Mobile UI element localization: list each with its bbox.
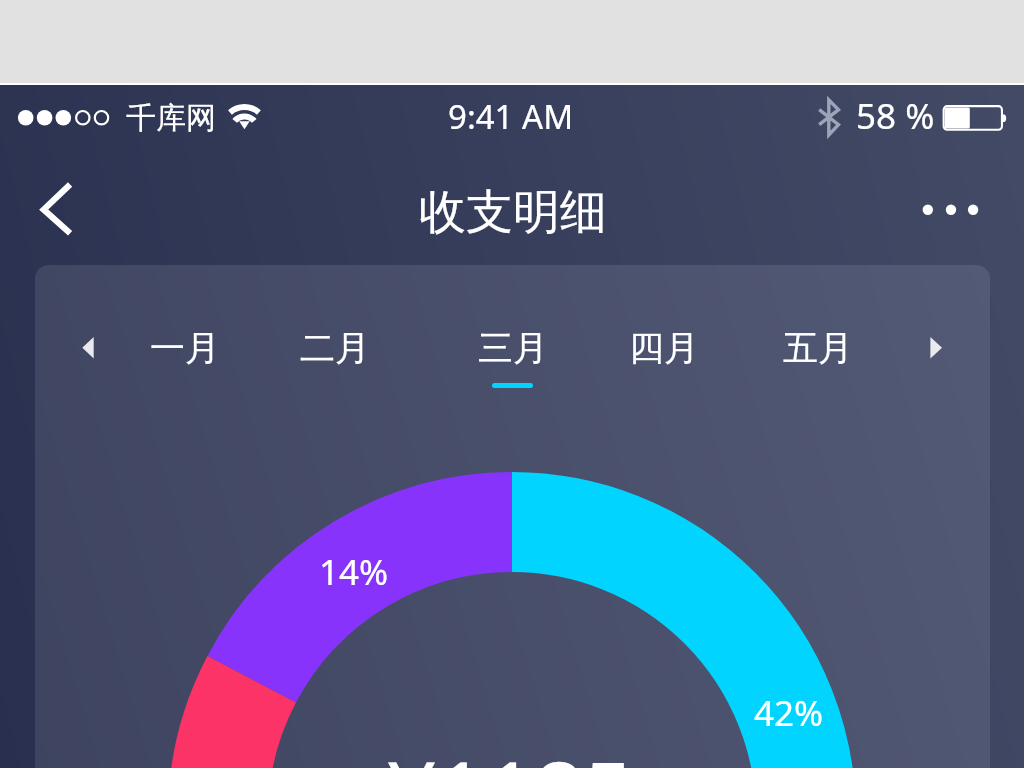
staticText: ¥1185 bbox=[387, 732, 633, 768]
staticText: 五月 bbox=[783, 326, 853, 370]
staticText: 千库网 bbox=[126, 99, 216, 137]
button[interactable]: 二月 bbox=[285, 323, 385, 373]
button[interactable]: 一月 bbox=[135, 323, 235, 373]
button[interactable]: More options bbox=[908, 180, 998, 230]
button[interactable]: Back bbox=[20, 177, 88, 245]
staticText: 三月 bbox=[478, 326, 548, 370]
staticText: 58 % bbox=[856, 92, 935, 140]
button[interactable]: Next month bbox=[916, 327, 956, 367]
staticText: 14% bbox=[319, 548, 389, 596]
staticText: 二月 bbox=[300, 326, 370, 370]
staticText: 一月 bbox=[150, 326, 220, 370]
button[interactable]: 五月 bbox=[768, 323, 868, 373]
staticText: 42% bbox=[754, 689, 824, 737]
staticText: 收支明细 bbox=[419, 183, 607, 242]
staticText: 四月 bbox=[629, 326, 699, 370]
button[interactable]: Previous month bbox=[68, 327, 108, 367]
staticText: 9:41 AM bbox=[448, 94, 574, 139]
button[interactable]: 三月 bbox=[463, 323, 563, 373]
button[interactable]: 四月 bbox=[614, 323, 714, 373]
